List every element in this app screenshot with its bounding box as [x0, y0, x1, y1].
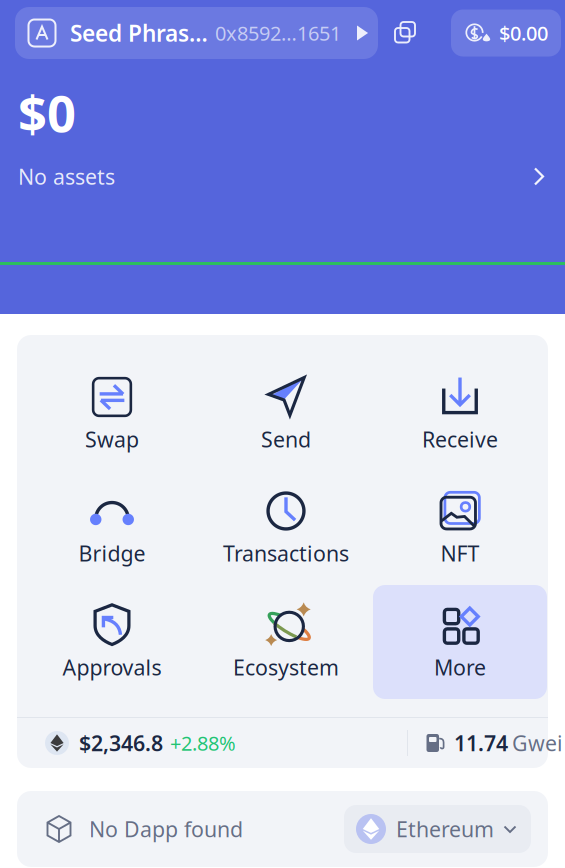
button[interactable]: Bridge [25, 471, 199, 585]
staticText: 11.74 [454, 729, 508, 757]
button[interactable]: Swap [25, 357, 199, 471]
staticText: Seed Phras… [70, 18, 208, 48]
staticText: 0x8592…1651 [215, 20, 341, 46]
button[interactable]: Ecosystem [199, 585, 373, 699]
staticText: No assets [18, 162, 115, 191]
button[interactable]: $0.00 [451, 9, 561, 56]
staticText: Approvals [62, 653, 161, 681]
button[interactable]: Send [199, 357, 373, 471]
staticText: Swap [85, 425, 139, 453]
staticText: Gwei [512, 729, 563, 757]
staticText: More [434, 653, 486, 681]
staticText: Ecosystem [233, 653, 339, 681]
button[interactable]: No assets [0, 146, 565, 191]
button[interactable]: Ethereum [344, 805, 531, 853]
button[interactable]: Receive [373, 357, 547, 471]
button[interactable]: Transactions [199, 471, 373, 585]
button[interactable]: Approvals [25, 585, 199, 699]
staticText: Send [261, 425, 311, 453]
button[interactable]: Seed Phras… [15, 7, 378, 59]
button[interactable]: 11.74 [408, 718, 548, 768]
staticText: Transactions [223, 539, 349, 567]
button[interactable]: More [373, 585, 547, 699]
staticText: No Dapp found [89, 815, 243, 843]
staticText: Bridge [78, 539, 145, 567]
staticText: $2,346.8 [79, 729, 163, 757]
staticText: +2.88% [170, 730, 236, 756]
staticText: Ethereum [396, 815, 494, 843]
staticText: NFT [440, 539, 479, 567]
button[interactable]: NFT [373, 471, 547, 585]
staticText: $0 [18, 79, 76, 146]
staticText: $0.00 [499, 20, 548, 46]
button[interactable]: Copy address [384, 11, 428, 55]
staticText: Receive [422, 425, 498, 453]
button[interactable]: $2,346.8 [17, 718, 407, 768]
